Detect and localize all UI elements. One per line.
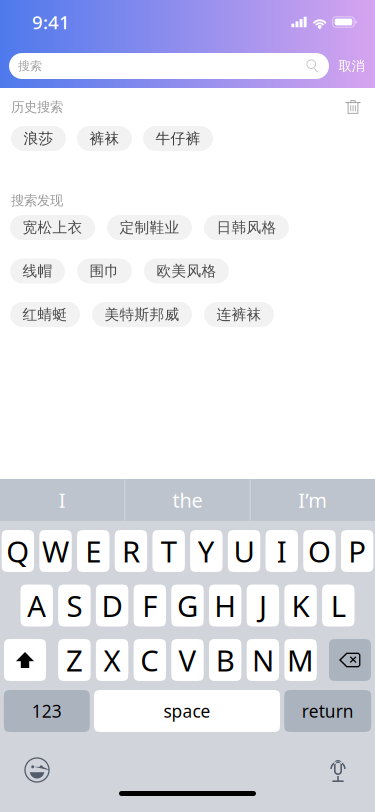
button[interactable]: Clear history [345, 99, 361, 115]
staticText: L [331, 586, 346, 625]
button[interactable]: 取消 [329, 53, 374, 79]
staticText: 日韩风格 [216, 218, 276, 236]
button[interactable]: 日韩风格 [204, 215, 289, 240]
staticText: C [140, 640, 159, 679]
staticText: N [252, 640, 274, 679]
staticText: Z [66, 640, 83, 679]
staticText: I’m [298, 487, 327, 513]
staticText: B [216, 640, 235, 679]
staticText: Y [198, 531, 215, 570]
button[interactable]: N [247, 639, 279, 681]
staticText: 定制鞋业 [119, 218, 179, 236]
button[interactable]: Q [2, 530, 34, 572]
button[interactable]: G [171, 584, 204, 626]
staticText: V [178, 640, 196, 679]
button[interactable]: 浪莎 [11, 126, 66, 151]
staticText: G [177, 586, 198, 625]
button[interactable]: Z [58, 639, 91, 681]
staticText: 红蜻蜓 [22, 305, 67, 323]
staticText: K [292, 586, 310, 625]
staticText: T [161, 531, 177, 570]
staticText: 搜索发现 [11, 192, 63, 209]
button[interactable]: 123 [4, 690, 90, 732]
button[interactable]: K [284, 584, 317, 626]
button[interactable]: I [266, 530, 298, 572]
staticText: X [104, 640, 121, 679]
button[interactable]: O [303, 530, 336, 572]
staticText: space [163, 699, 210, 722]
button[interactable]: S [58, 584, 91, 626]
button[interactable]: I [0, 479, 124, 521]
button[interactable]: F [134, 584, 166, 626]
button[interactable]: 线帽 [10, 258, 65, 283]
button[interactable]: H [209, 584, 241, 626]
staticText: W [42, 531, 69, 570]
staticText: 欧美风格 [156, 262, 216, 280]
staticText: 历史搜索 [11, 99, 63, 115]
staticText: R [122, 531, 140, 570]
staticText: O [308, 531, 331, 570]
staticText: F [142, 586, 157, 625]
button[interactable]: P [341, 530, 373, 572]
button[interactable]: U [228, 530, 260, 572]
staticText: 连裤袜 [216, 305, 261, 323]
staticText: U [233, 531, 254, 570]
button[interactable]: W [39, 530, 72, 572]
staticText: D [102, 586, 123, 625]
staticText: 宽松上衣 [22, 218, 82, 236]
staticText: 牛仔裤 [155, 129, 200, 147]
staticText: 123 [32, 699, 62, 722]
staticText: A [27, 586, 46, 625]
button[interactable]: Y [190, 530, 223, 572]
staticText: 美特斯邦威 [104, 305, 179, 323]
button[interactable]: T [152, 530, 185, 572]
staticText: S [66, 586, 82, 625]
staticText: 线帽 [22, 262, 52, 280]
button[interactable]: R [115, 530, 147, 572]
staticText: I [277, 531, 287, 570]
staticText: 取消 [338, 58, 364, 74]
staticText: 搜索 [18, 59, 42, 73]
button[interactable]: E [77, 530, 109, 572]
staticText: E [85, 531, 101, 570]
staticText: P [348, 531, 366, 570]
staticText: 9:41 [32, 10, 70, 34]
staticText: I [59, 487, 66, 513]
staticText: 围巾 [89, 262, 119, 280]
staticText: the [172, 487, 202, 513]
button[interactable]: space [94, 690, 280, 732]
button[interactable]: X [96, 639, 128, 681]
button[interactable]: L [322, 584, 354, 626]
button[interactable]: J [247, 584, 279, 626]
button[interactable]: Delete [329, 639, 371, 681]
staticText: Q [6, 531, 29, 570]
button[interactable]: 定制鞋业 [107, 215, 192, 240]
staticText: J [259, 586, 267, 625]
button[interactable]: Shift [4, 639, 46, 681]
button[interactable]: return [284, 690, 371, 732]
button[interactable]: Dictate [329, 758, 347, 782]
button[interactable]: 宽松上衣 [10, 215, 95, 240]
button[interactable]: B [209, 639, 241, 681]
button[interactable]: 红蜻蜓 [10, 302, 80, 327]
button[interactable]: Emoji [24, 757, 50, 783]
button[interactable]: C [134, 639, 166, 681]
button[interactable]: M [284, 639, 317, 681]
staticText: M [287, 640, 314, 679]
button[interactable]: the [125, 479, 250, 521]
staticText: 裤袜 [89, 129, 119, 147]
button[interactable]: D [96, 584, 128, 626]
button[interactable]: 美特斯邦威 [92, 302, 192, 327]
button[interactable]: 围巾 [77, 258, 132, 283]
staticText: H [214, 586, 236, 625]
button[interactable]: 牛仔裤 [143, 126, 213, 151]
button[interactable]: A [20, 584, 53, 626]
button[interactable]: V [171, 639, 204, 681]
button[interactable]: 裤袜 [77, 126, 132, 151]
button[interactable]: 连裤袜 [204, 302, 274, 327]
button[interactable]: 欧美风格 [144, 258, 229, 283]
staticText: return [302, 699, 354, 722]
button[interactable]: I’m [251, 479, 375, 521]
staticText: 浪莎 [23, 129, 53, 147]
